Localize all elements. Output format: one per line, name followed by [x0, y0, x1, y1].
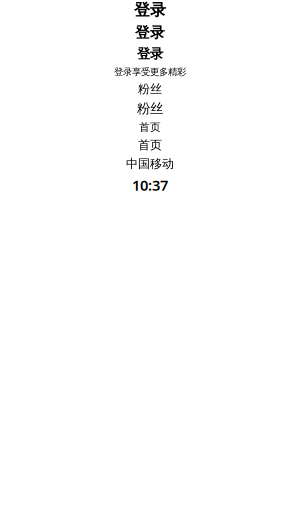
staticText: 粉丝	[138, 81, 162, 96]
staticText: 登录	[135, 24, 165, 42]
staticText: 登录	[134, 0, 166, 20]
staticText: 登录	[137, 46, 163, 62]
staticText: 首页	[138, 138, 162, 152]
staticText: 10:37	[132, 175, 168, 195]
staticText: 登录享受更多精彩	[114, 66, 186, 77]
staticText: 首页	[139, 121, 161, 134]
staticText: 中国移动	[126, 156, 174, 171]
staticText: 粉丝	[137, 100, 163, 117]
